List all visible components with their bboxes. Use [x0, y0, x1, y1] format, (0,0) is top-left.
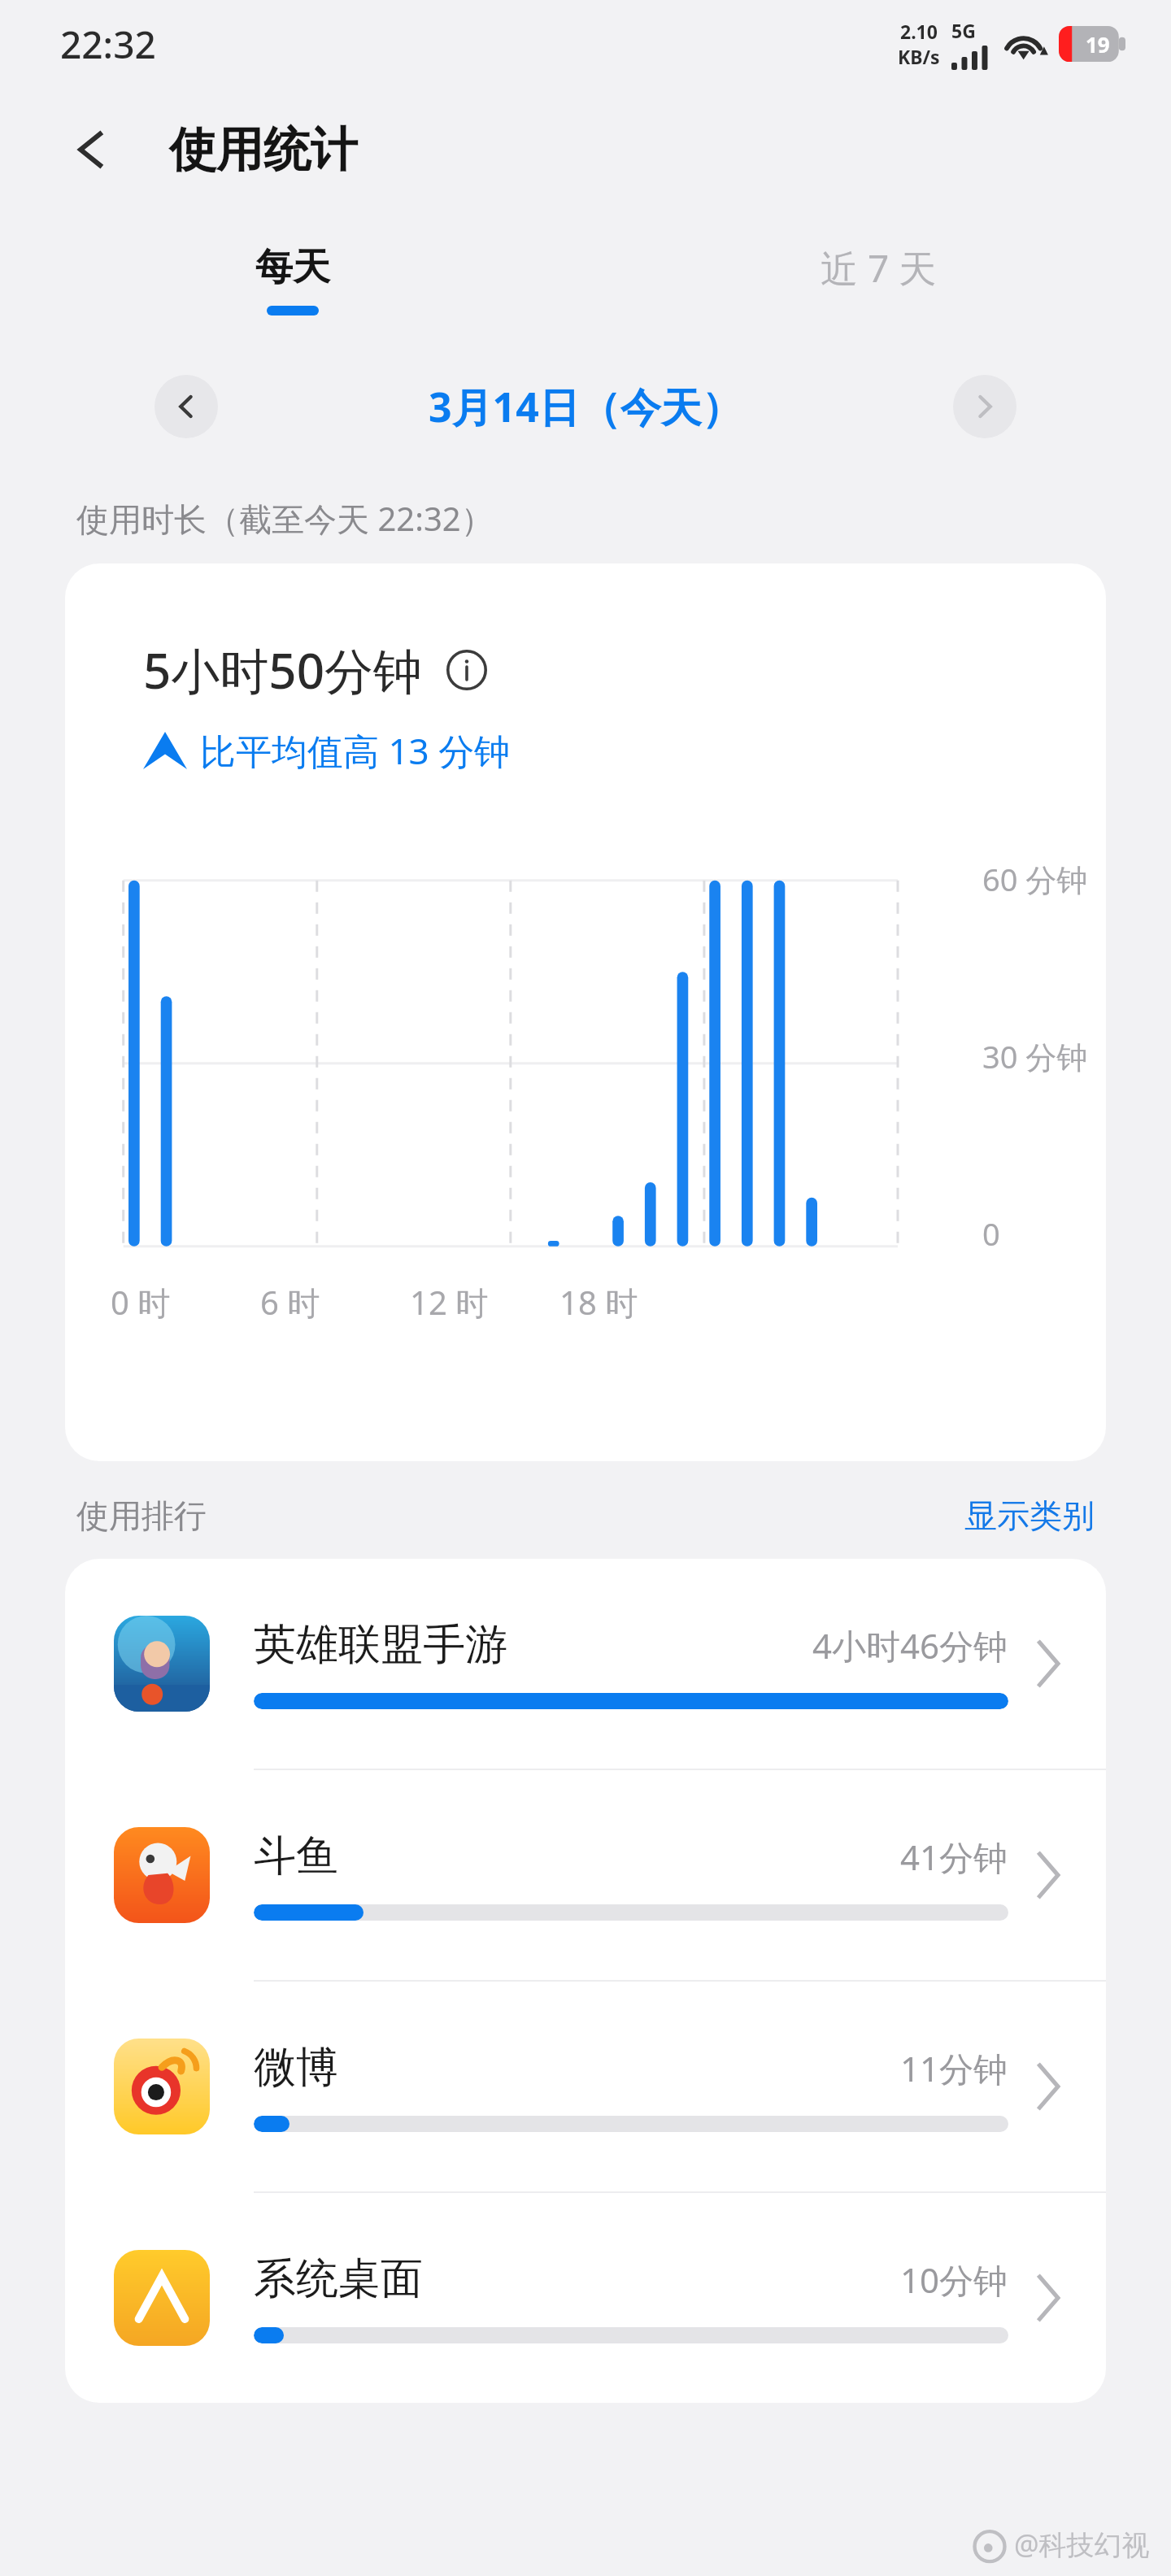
staticText: 使用排行 — [76, 1495, 207, 1536]
staticText: 近 7 天 — [821, 242, 937, 294]
staticText: 18 时 — [559, 1280, 638, 1325]
staticText: 使用时长（截至今天 22:32） — [76, 496, 494, 541]
staticText: 3月14日（今天） — [429, 379, 742, 434]
staticText: 2.10 — [900, 19, 938, 44]
staticText: 斗鱼 — [254, 1830, 338, 1883]
staticText: 英雄联盟手游 — [254, 1618, 507, 1672]
staticText: 30 分钟 — [982, 1035, 1088, 1077]
staticText: 0 — [982, 1212, 1000, 1255]
button[interactable]: 说明 — [443, 646, 490, 694]
button[interactable]: 系统桌面 — [65, 2193, 1106, 2403]
staticText: 41分钟 — [900, 1834, 1008, 1880]
staticText: KB/s — [898, 44, 940, 69]
button[interactable]: 返回 — [52, 111, 130, 189]
button[interactable]: 微博 — [65, 1982, 1106, 2193]
staticText: 微博 — [254, 2041, 338, 2095]
staticText: 5小时50分钟 — [143, 637, 422, 703]
staticText: 60 分钟 — [982, 858, 1088, 900]
staticText: 系统桌面 — [254, 2252, 423, 2306]
staticText: 使用统计 — [169, 120, 358, 180]
staticText: 0 时 — [111, 1280, 171, 1325]
staticText: 4小时46分钟 — [812, 1622, 1008, 1669]
staticText: @科技幻视 — [1014, 2526, 1150, 2563]
button[interactable]: 每天 — [0, 211, 585, 348]
button[interactable]: 上一天 — [155, 375, 218, 438]
staticText: 比平均值高 13 分钟 — [200, 726, 511, 775]
staticText: 6 时 — [260, 1280, 320, 1325]
button[interactable]: 斗鱼 — [65, 1770, 1106, 1982]
button[interactable]: 近 7 天 — [585, 211, 1171, 348]
staticText: 10分钟 — [900, 2256, 1008, 2303]
staticText: 19 — [1086, 30, 1110, 59]
staticText: 12 时 — [410, 1280, 489, 1325]
staticText: 显示类别 — [964, 1495, 1095, 1536]
staticText: 22:32 — [60, 19, 156, 70]
button[interactable]: 下一天 — [953, 375, 1016, 438]
button[interactable]: 英雄联盟手游 — [65, 1559, 1106, 1770]
staticText: 5G — [951, 18, 976, 43]
staticText: 每天 — [255, 244, 330, 291]
staticText: 11分钟 — [900, 2045, 1008, 2091]
button[interactable]: 显示类别 — [964, 1495, 1095, 1536]
